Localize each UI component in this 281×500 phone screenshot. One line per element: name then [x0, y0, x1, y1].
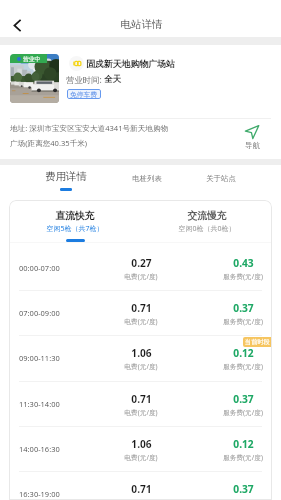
staticText: 0.12: [233, 346, 254, 360]
staticText: 固戍新天地购物广场站: [86, 58, 175, 69]
button[interactable]: 11:30-14:00: [9, 381, 272, 426]
button[interactable]: 直流快充: [19, 200, 131, 245]
button[interactable]: 费用详情: [40, 165, 92, 200]
staticText: 00:00-07:00: [19, 263, 60, 273]
button[interactable]: 07:00-09:00: [9, 290, 272, 335]
staticText: 1.06: [131, 346, 152, 360]
staticText: 电桩列表: [132, 174, 162, 183]
button[interactable]: Station photo: [10, 54, 59, 103]
staticText: 空闲0枪（共0枪）: [178, 224, 236, 234]
staticText: 地址: 深圳市宝安区宝安大道4341号新天地购物广场(距离您40.35千米): [10, 123, 170, 148]
staticText: 1.06: [131, 437, 152, 451]
staticText: 导航: [245, 141, 260, 150]
staticText: 电费(元/度): [124, 498, 158, 500]
staticText: 服务费(元/度): [223, 408, 263, 417]
staticText: 营业中: [23, 55, 41, 62]
staticText: 0.37: [233, 301, 254, 315]
button[interactable]: 00:00-07:00: [9, 245, 272, 290]
staticText: 0.71: [131, 392, 152, 406]
staticText: 营业时间:: [66, 74, 104, 85]
staticText: 服务费(元/度): [223, 362, 263, 371]
staticText: 07:00-09:00: [19, 308, 60, 318]
staticText: 服务费(元/度): [223, 317, 263, 326]
staticText: 11:30-14:00: [19, 399, 60, 409]
staticText: 免停车费: [70, 90, 98, 99]
staticText: 16:30-19:00: [19, 489, 60, 499]
button[interactable]: 电桩列表: [121, 165, 173, 200]
staticText: 14:00-16:30: [19, 444, 60, 454]
staticText: 0.37: [233, 392, 254, 406]
button[interactable]: 导航: [239, 125, 265, 150]
staticText: 电费(元/度): [124, 317, 158, 326]
staticText: 交流慢充: [187, 210, 227, 222]
staticText: 电费(元/度): [124, 362, 158, 371]
staticText: 0.43: [233, 256, 254, 270]
staticText: 电站详情: [120, 18, 163, 31]
button[interactable]: 交流慢充: [151, 200, 263, 245]
staticText: 服务费(元/度): [223, 272, 263, 281]
staticText: 关于站点: [206, 174, 236, 183]
button[interactable]: Back: [2, 10, 32, 40]
staticText: 直流快充: [55, 210, 95, 222]
button[interactable]: 14:00-16:30: [9, 426, 272, 471]
staticText: 0.71: [131, 301, 152, 315]
staticText: 电费(元/度): [124, 408, 158, 417]
button[interactable]: 09:00-11:30: [9, 335, 272, 380]
button[interactable]: 免停车费: [70, 89, 98, 99]
staticText: 当前时段: [245, 338, 270, 346]
staticText: 09:00-11:30: [19, 353, 60, 363]
staticText: 电费(元/度): [124, 272, 158, 281]
staticText: 服务费(元/度): [223, 453, 263, 462]
button[interactable]: 16:30-19:00: [9, 471, 272, 500]
staticText: 费用详情: [45, 170, 87, 183]
staticText: 0.71: [131, 482, 152, 496]
staticText: 服务费(元/度): [223, 498, 263, 500]
staticText: 空闲5枪（共7枪）: [46, 224, 104, 234]
staticText: 0.12: [233, 437, 254, 451]
staticText: 电费(元/度): [124, 453, 158, 462]
button[interactable]: 关于站点: [195, 165, 247, 200]
staticText: 0.37: [233, 482, 254, 496]
staticText: 全天: [104, 74, 121, 85]
staticText: 0.27: [131, 256, 152, 270]
